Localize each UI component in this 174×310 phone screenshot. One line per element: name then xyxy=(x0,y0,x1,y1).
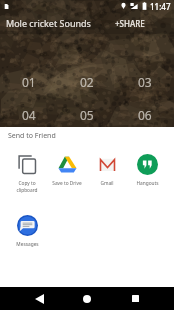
staticText: 04 xyxy=(22,107,36,123)
staticText: Send to Friend xyxy=(8,131,56,141)
staticText: 05 xyxy=(80,107,94,123)
staticText: 01 xyxy=(22,74,36,90)
button[interactable]: Home xyxy=(75,287,99,310)
staticText: Hangouts xyxy=(136,180,159,187)
staticText: Mole cricket Sounds xyxy=(6,17,91,29)
button[interactable]: Messages xyxy=(7,215,47,248)
staticText: +SHARE xyxy=(115,18,145,29)
button[interactable]: 01 xyxy=(0,65,58,98)
staticText: Copy to clipboard xyxy=(16,180,38,194)
button[interactable]: 02 xyxy=(58,65,116,98)
button[interactable]: Hangouts xyxy=(127,154,167,187)
staticText: 02 xyxy=(80,74,94,90)
button[interactable]: 05 xyxy=(58,98,116,131)
button[interactable]: 06 xyxy=(116,98,174,131)
button[interactable]: Recents xyxy=(123,287,147,310)
staticText: 06 xyxy=(138,107,152,123)
staticText: 11:47 xyxy=(150,1,171,12)
button[interactable]: Copy to clipboard xyxy=(7,154,47,194)
staticText: 03 xyxy=(138,74,152,90)
button[interactable]: +SHARE xyxy=(110,14,150,33)
button[interactable]: Gmail xyxy=(87,154,127,187)
button[interactable]: Save to Drive xyxy=(47,154,87,187)
button[interactable]: 03 xyxy=(116,65,174,98)
button[interactable]: 04 xyxy=(0,98,58,131)
staticText: Save to Drive xyxy=(52,180,82,187)
staticText: Messages xyxy=(16,241,39,248)
staticText: Gmail xyxy=(100,180,114,187)
button[interactable]: Back xyxy=(27,287,51,310)
